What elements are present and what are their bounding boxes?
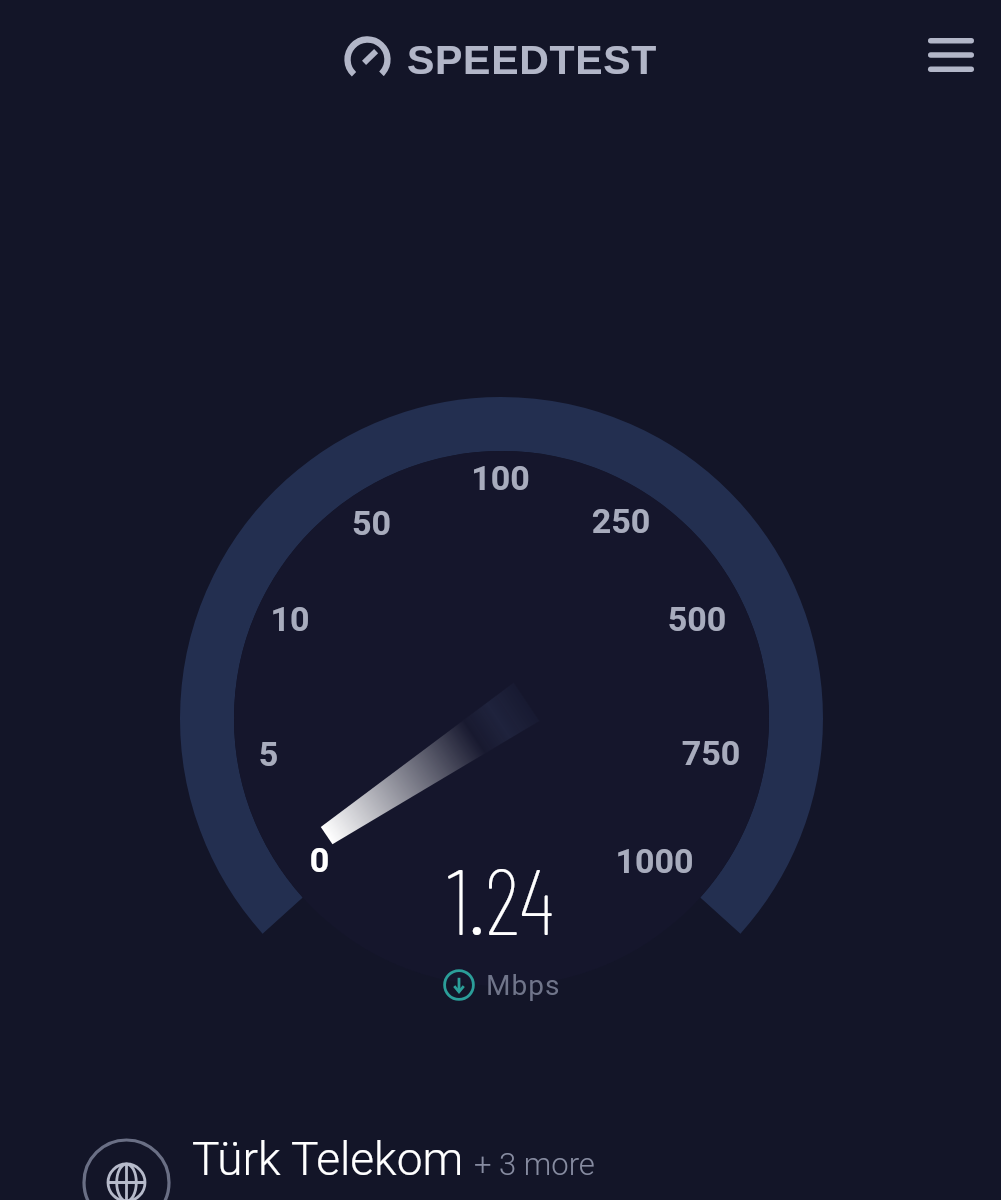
staticText: 1000 bbox=[607, 841, 702, 881]
staticText: 750 bbox=[673, 733, 749, 773]
staticText: 10 bbox=[262, 599, 318, 639]
button[interactable]: Menu bbox=[903, 7, 999, 103]
staticText: + 3 more bbox=[474, 1146, 595, 1182]
staticText: 50 bbox=[343, 503, 400, 543]
staticText: 0 bbox=[301, 840, 338, 880]
staticText: 250 bbox=[583, 501, 659, 541]
button[interactable]: Türk Telekom bbox=[0, 1112, 1001, 1200]
staticText: 5 bbox=[250, 734, 287, 774]
staticText: 1.24 bbox=[447, 843, 555, 953]
staticText: 100 bbox=[463, 458, 538, 498]
staticText: 500 bbox=[659, 599, 735, 639]
staticText: SPEEDTEST bbox=[407, 37, 658, 83]
staticText: Türk Telekom bbox=[192, 1132, 464, 1186]
staticText: Mbps bbox=[486, 969, 561, 1002]
